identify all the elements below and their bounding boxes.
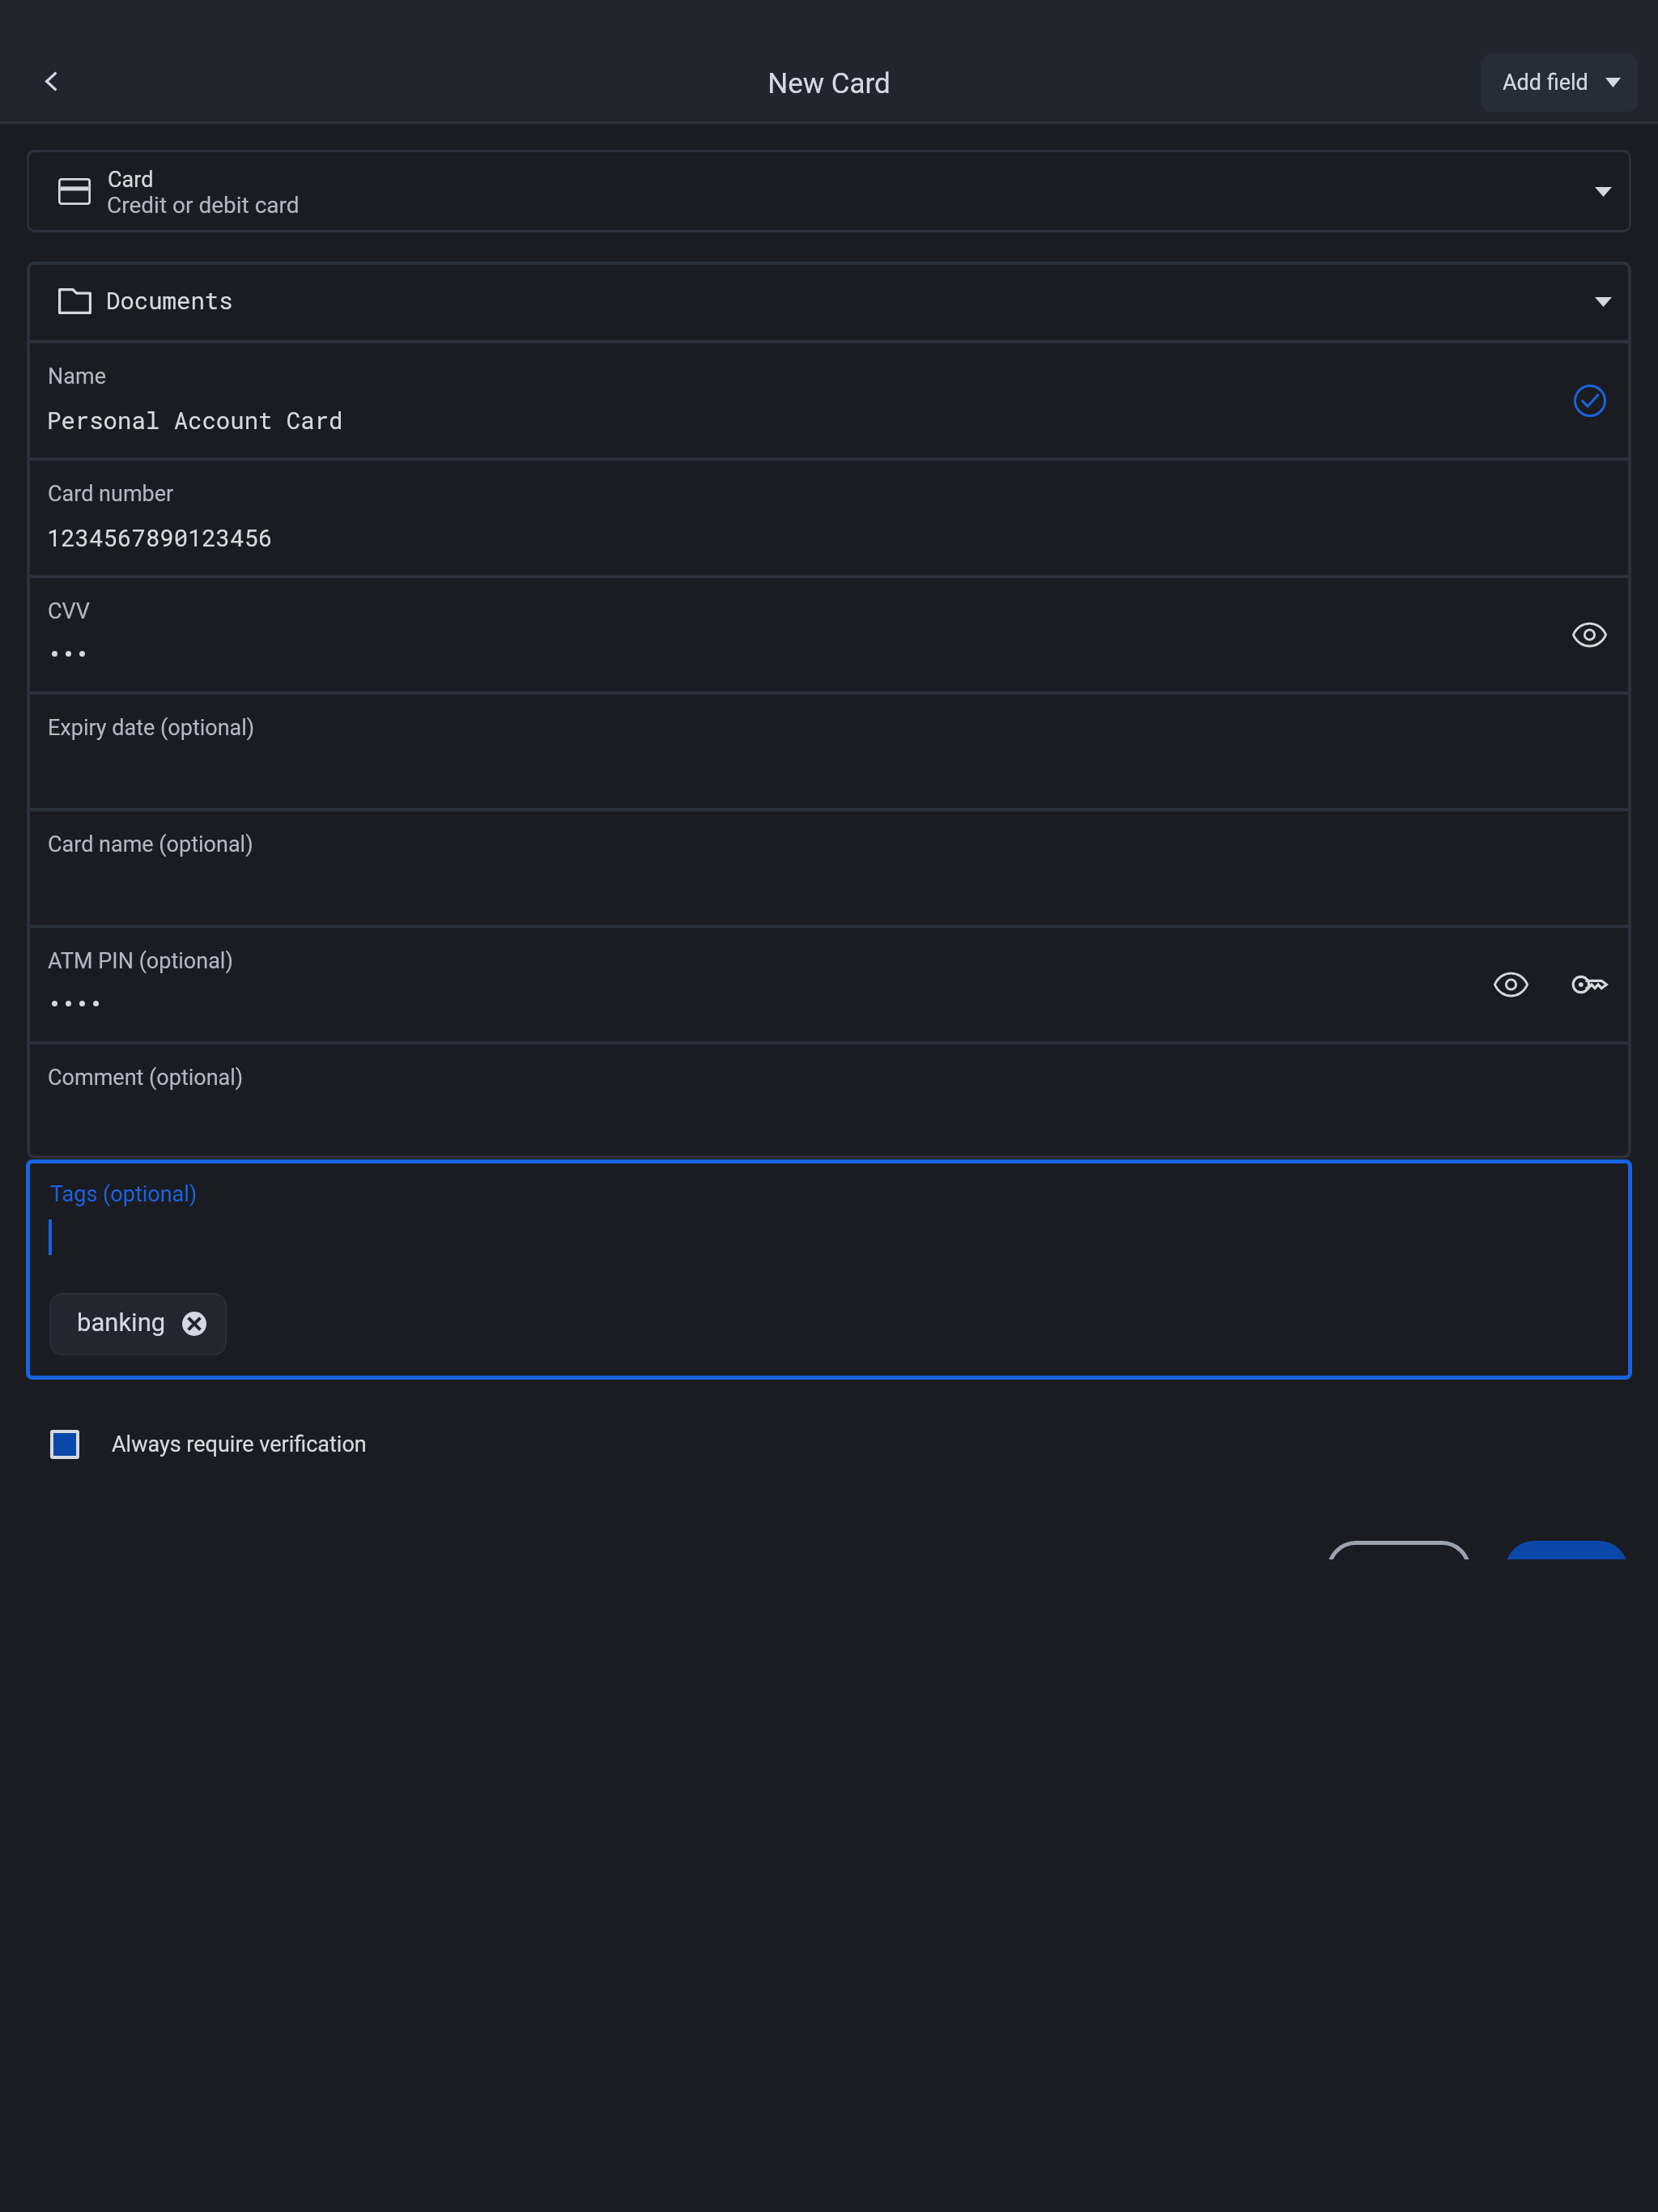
staticText: 1234567890123456 xyxy=(47,522,273,553)
button[interactable]: Valid xyxy=(1567,377,1613,424)
staticText: Personal Account Card xyxy=(47,405,343,436)
button[interactable]: Card number xyxy=(27,461,1631,575)
staticText: Always require verification xyxy=(112,1431,367,1457)
button[interactable]: Show CVV xyxy=(1563,609,1615,661)
staticText: Card xyxy=(108,167,154,193)
staticText: Documents xyxy=(106,285,233,316)
staticText: Add field xyxy=(1503,70,1588,96)
button[interactable]: Name xyxy=(27,343,1631,457)
button[interactable]: CVV xyxy=(27,578,1631,691)
staticText: Name xyxy=(48,364,106,389)
staticText: New Card xyxy=(767,67,891,100)
button[interactable]: Generate password xyxy=(1563,959,1615,1010)
staticText: Card name (optional) xyxy=(48,832,253,857)
button[interactable]: Save xyxy=(1505,1541,1628,1559)
button[interactable]: Back xyxy=(27,57,75,105)
staticText: Comment (optional) xyxy=(48,1065,244,1091)
staticText: Tags (optional) xyxy=(50,1181,198,1207)
button[interactable]: Card xyxy=(27,150,1631,232)
button[interactable]: Expiry date (optional) xyxy=(27,695,1631,808)
button[interactable]: ATM PIN (optional) xyxy=(27,928,1631,1041)
staticText: banking xyxy=(77,1308,166,1337)
staticText: Credit or debit card xyxy=(107,192,300,219)
button[interactable]: Always require verification xyxy=(50,1430,367,1459)
button[interactable]: Tags (optional) xyxy=(26,1159,1632,1380)
staticText: Expiry date (optional) xyxy=(48,715,255,741)
staticText: Card number xyxy=(48,481,174,507)
button[interactable]: Add field xyxy=(1481,53,1639,112)
button[interactable]: Show PIN xyxy=(1485,959,1537,1010)
button[interactable]: Cancel xyxy=(1327,1541,1471,1559)
button[interactable]: banking xyxy=(49,1293,227,1355)
button[interactable]: Comment (optional) xyxy=(27,1044,1631,1159)
staticText: ATM PIN (optional) xyxy=(48,948,233,974)
other: Remove tag banking xyxy=(182,1312,206,1336)
staticText: CVV xyxy=(48,598,90,624)
button[interactable]: Documents xyxy=(27,262,1631,340)
button[interactable]: Card name (optional) xyxy=(27,811,1631,925)
